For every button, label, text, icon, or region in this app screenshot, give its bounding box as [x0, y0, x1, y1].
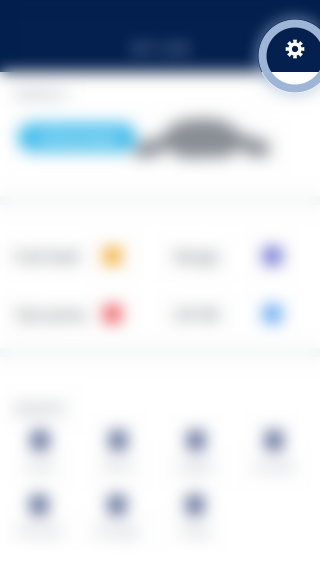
- staticText: Climate: [17, 522, 60, 538]
- staticText: Fuel level: [15, 246, 79, 266]
- staticText: Tyre press.: [15, 304, 89, 324]
- button[interactable]: Range: [160, 227, 320, 285]
- staticText: Lights: [179, 458, 212, 474]
- button[interactable]: Climate: [0, 490, 78, 543]
- button[interactable]: Horn: [79, 426, 157, 479]
- button[interactable]: Locate: [235, 426, 313, 479]
- staticText: Lock: [27, 458, 52, 474]
- button[interactable]: Oil life: [160, 285, 320, 343]
- staticText: Horn: [104, 458, 132, 474]
- button[interactable]: Lights: [157, 426, 235, 479]
- staticText: Trips: [181, 522, 208, 538]
- staticText: Unlocked: [37, 126, 117, 149]
- staticText: MY CAR: [130, 37, 190, 59]
- staticText: REMOTE: [15, 401, 64, 417]
- button[interactable]: Unlocked: [18, 123, 136, 152]
- staticText: Oil life: [175, 304, 219, 324]
- staticText: Locate: [255, 458, 292, 474]
- staticText: Charge: [96, 522, 137, 538]
- button[interactable]: Trips: [156, 490, 234, 543]
- button[interactable]: Charge: [78, 490, 156, 543]
- button[interactable]: Lock: [1, 426, 79, 479]
- staticText: Range: [175, 246, 218, 266]
- button[interactable]: Fuel level: [0, 227, 160, 285]
- button[interactable]: Tyre press.: [0, 285, 160, 343]
- button[interactable]: Settings: [273, 27, 317, 71]
